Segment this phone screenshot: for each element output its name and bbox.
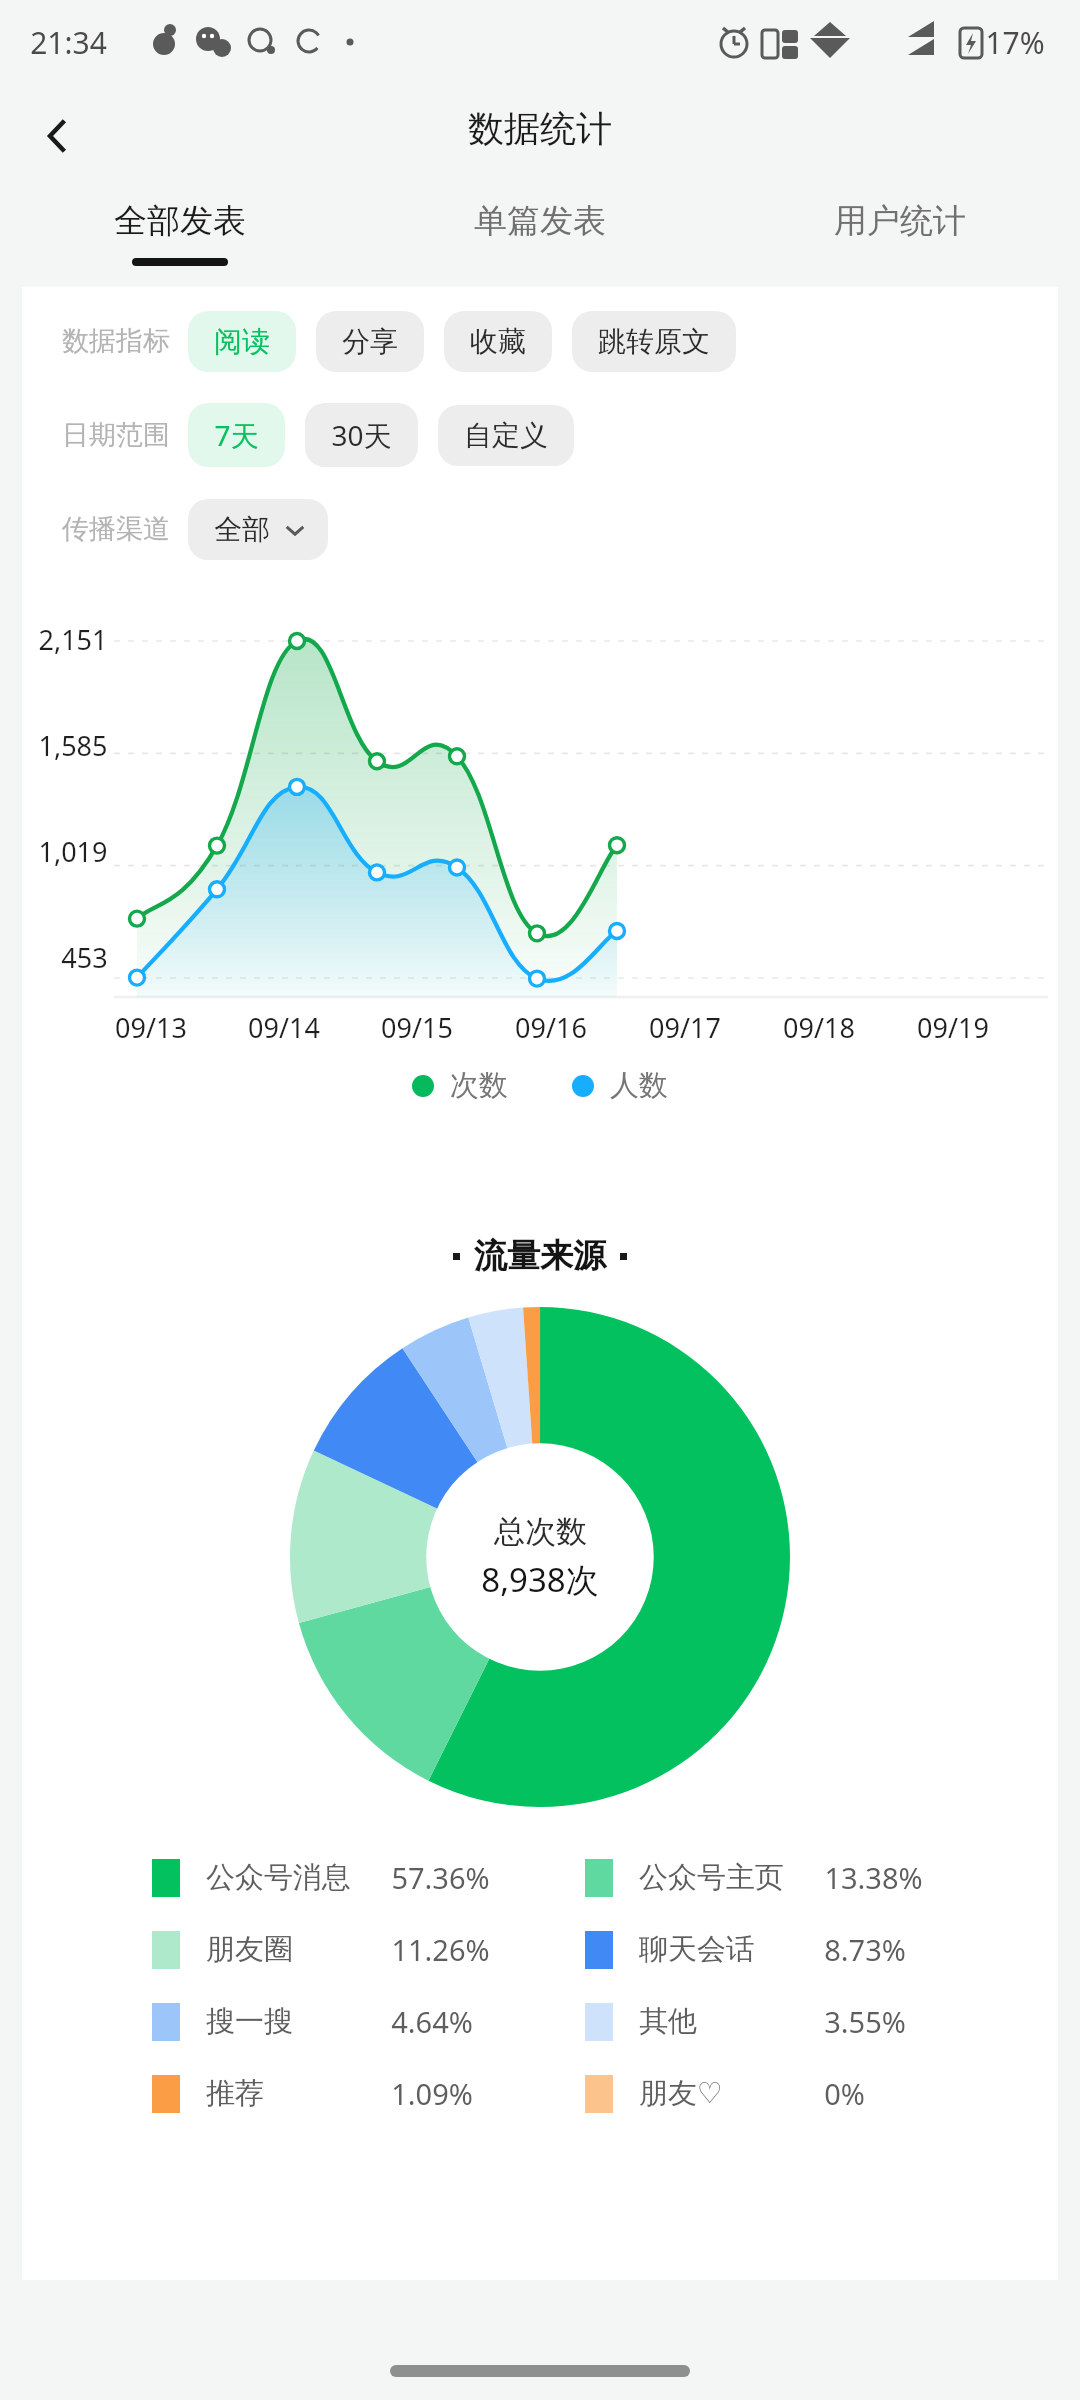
staticText: 朋友圈: [206, 1931, 293, 1968]
staticText: 公众号主页: [639, 1859, 784, 1896]
staticText: 8,938次: [481, 1557, 599, 1602]
staticText: 搜一搜: [206, 2003, 293, 2040]
staticText: 09/15: [381, 1009, 453, 1046]
staticText: 09/19: [917, 1009, 989, 1046]
staticText: 朋友♡: [639, 2075, 723, 2112]
staticText: 21:34: [30, 22, 107, 63]
staticText: 1.09%: [391, 2074, 473, 2113]
button[interactable]: 推荐: [152, 2074, 585, 2113]
staticText: 分享: [342, 324, 398, 359]
button[interactable]: 收藏: [444, 311, 552, 372]
staticText: 人数: [610, 1067, 668, 1104]
staticText: 2,151: [38, 621, 108, 658]
staticText: 全部: [214, 512, 270, 547]
button[interactable]: 朋友♡: [585, 2074, 1018, 2113]
staticText: 阅读: [214, 324, 270, 359]
staticText: 4.64%: [391, 2002, 473, 2041]
staticText: 1,585: [38, 727, 108, 764]
staticText: 09/13: [115, 1009, 187, 1046]
button[interactable]: 全部: [188, 499, 328, 560]
button[interactable]: 7天: [188, 403, 285, 467]
button[interactable]: 公众号消息: [152, 1858, 585, 1897]
button[interactable]: 人数: [572, 1067, 668, 1104]
staticText: 流量来源: [474, 1235, 606, 1277]
staticText: 30天: [331, 416, 392, 454]
staticText: 1,019: [38, 833, 108, 870]
button[interactable]: Back: [18, 96, 98, 176]
button[interactable]: 自定义: [438, 405, 574, 466]
button[interactable]: 聊天会话: [585, 1930, 1018, 1969]
button[interactable]: 其他: [585, 2002, 1018, 2041]
staticText: 0%: [824, 2074, 865, 2113]
button[interactable]: 公众号主页: [585, 1858, 1018, 1897]
button[interactable]: 搜一搜: [152, 2002, 585, 2041]
staticText: 次数: [450, 1067, 508, 1104]
staticText: 09/14: [248, 1009, 320, 1046]
staticText: 数据指标: [62, 324, 170, 358]
staticText: 聊天会话: [639, 1931, 755, 1968]
staticText: 单篇发表: [474, 200, 606, 242]
staticText: 7天: [214, 416, 259, 454]
staticText: 总次数: [494, 1512, 587, 1551]
staticText: 日期范围: [62, 418, 170, 452]
staticText: 13.38%: [824, 1858, 923, 1897]
staticText: 推荐: [206, 2075, 264, 2112]
button[interactable]: 朋友圈: [152, 1930, 585, 1969]
button[interactable]: 30天: [305, 403, 418, 467]
staticText: 11.26%: [391, 1930, 490, 1969]
staticText: 公众号消息: [206, 1859, 351, 1896]
staticText: 09/17: [649, 1009, 721, 1046]
staticText: 传播渠道: [62, 512, 170, 546]
staticText: 57.36%: [391, 1858, 490, 1897]
staticText: 8.73%: [824, 1930, 906, 1969]
staticText: 用户统计: [834, 200, 966, 242]
staticText: 453: [61, 939, 108, 976]
staticText: 自定义: [464, 418, 548, 453]
staticText: 收藏: [470, 324, 526, 359]
staticText: 3.55%: [824, 2002, 906, 2041]
staticText: 全部发表: [114, 200, 246, 242]
button[interactable]: 分享: [316, 311, 424, 372]
button[interactable]: 全部发表: [0, 182, 360, 287]
button[interactable]: 阅读: [188, 311, 296, 372]
staticText: 09/16: [515, 1009, 587, 1046]
button[interactable]: 跳转原文: [572, 311, 736, 372]
staticText: 跳转原文: [598, 324, 710, 359]
button[interactable]: 单篇发表: [360, 182, 720, 287]
staticText: 数据统计: [468, 106, 612, 151]
button[interactable]: 次数: [412, 1067, 508, 1104]
button[interactable]: 用户统计: [720, 182, 1080, 287]
staticText: 17%: [985, 22, 1045, 63]
staticText: 其他: [639, 2003, 697, 2040]
staticText: 09/18: [783, 1009, 855, 1046]
